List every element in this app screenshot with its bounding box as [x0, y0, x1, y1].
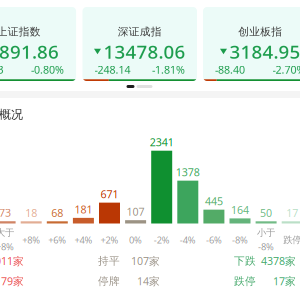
staticText: 1011家 [0, 254, 24, 268]
staticText: 107家 [131, 254, 160, 268]
staticText: 跌停 [283, 234, 300, 246]
staticText: 2341 [150, 135, 174, 149]
staticText: -8% [232, 234, 248, 246]
staticText: +8% [22, 234, 40, 246]
staticText: 深证成指 [118, 25, 162, 38]
button[interactable]: 上证指数 [0, 7, 76, 81]
staticText: 跌停 [234, 274, 256, 288]
staticText: 445 [205, 194, 223, 208]
staticText: 上证指数 [0, 25, 41, 38]
staticText: 3184.95 [229, 39, 300, 64]
staticText: -6% [206, 234, 222, 246]
staticText: 17家 [273, 274, 296, 288]
staticText: 79家 [1, 274, 24, 288]
staticText: 创业板指 [238, 25, 282, 38]
staticText: 671 [100, 187, 118, 201]
staticText: -4% [180, 234, 196, 246]
staticText: 73 [0, 206, 11, 220]
staticText: +6% [48, 234, 66, 246]
staticText: 68 [51, 206, 63, 220]
staticText: 0% [129, 234, 142, 246]
staticText: -248.14 [94, 62, 130, 77]
staticText: 涨跌概况 [0, 107, 23, 122]
staticText: -31.33 [0, 62, 4, 77]
staticText: -88.40 [215, 62, 245, 77]
button[interactable]: 深证成指 [82, 7, 197, 81]
staticText: 小于 [257, 227, 275, 238]
staticText: -0.80% [31, 62, 64, 77]
staticText: 下跌 [234, 254, 256, 267]
staticText: +2% [100, 234, 118, 246]
staticText: 14家 [137, 274, 160, 288]
staticText: -2.70% [272, 62, 300, 77]
staticText: +4% [74, 234, 92, 246]
staticText: 3891.86 [0, 39, 59, 64]
staticText: 164 [231, 203, 249, 217]
staticText: -8% [258, 240, 274, 253]
staticText: 107 [127, 205, 145, 219]
staticText: 停牌 [98, 274, 120, 288]
staticText: 50 [260, 206, 272, 220]
staticText: -1.81% [152, 62, 185, 77]
staticText: 大于 [0, 227, 14, 238]
staticText: 181 [74, 202, 92, 216]
staticText: 13478.06 [103, 39, 185, 64]
staticText: 4378家 [261, 254, 296, 268]
staticText: 持平 [98, 254, 120, 267]
staticText: 18 [25, 206, 37, 220]
staticText: -2% [154, 234, 170, 246]
staticText: +8% [0, 240, 14, 253]
staticText: 17 [286, 206, 298, 220]
button[interactable]: 创业板指 [203, 7, 300, 81]
staticText: 1378 [176, 165, 200, 179]
